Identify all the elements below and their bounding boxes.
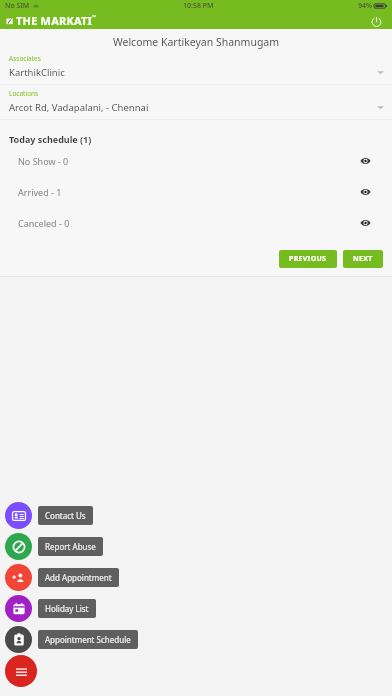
staticText: Contact Us	[45, 510, 86, 521]
button[interactable]: Report Abuse	[5, 531, 103, 562]
button[interactable]: Contact Us	[5, 500, 93, 531]
staticText: Holiday List	[45, 603, 89, 614]
staticText: No SIM	[5, 1, 30, 11]
staticText: Today schedule (1)	[9, 133, 92, 145]
button[interactable]: Associates	[0, 54, 392, 89]
staticText: Appointment Schedule	[45, 634, 131, 645]
staticText: Canceled - 0	[18, 217, 70, 229]
staticText: Arcot Rd, Vadapalani, - Chennai	[9, 101, 149, 114]
staticText: KarthikClinic	[9, 66, 65, 79]
button[interactable]: Add Appointment	[5, 562, 119, 593]
button[interactable]: Locations	[0, 89, 392, 124]
staticText: NEXT	[353, 254, 373, 264]
button[interactable]: Appointment Schedule	[5, 624, 138, 655]
staticText: Locations	[9, 89, 39, 98]
button[interactable]: No Show - 0	[0, 145, 392, 176]
staticText: THE MARKATI	[16, 13, 92, 28]
staticText: Report Abuse	[45, 541, 96, 552]
staticText: Arrived - 1	[18, 186, 62, 198]
staticText: ™	[92, 14, 96, 21]
other: View Arrived - 1	[358, 185, 372, 199]
staticText: Add Appointment	[45, 572, 112, 583]
button[interactable]: Holiday List	[5, 593, 96, 624]
button[interactable]: Menu	[5, 655, 37, 687]
staticText: No Show - 0	[18, 155, 69, 167]
staticText: 94%	[358, 1, 372, 11]
other: View No Show - 0	[358, 154, 372, 168]
button[interactable]: Canceled - 0	[0, 207, 392, 238]
staticText: Associates	[9, 54, 41, 63]
other: View Canceled - 0	[358, 216, 372, 230]
button[interactable]: PREVIOUS	[279, 250, 337, 268]
staticText: Welcome Kartikeyan Shanmugam	[0, 35, 392, 49]
button[interactable]: NEXT	[343, 250, 383, 268]
staticText: 10:58 PM	[183, 1, 214, 11]
staticText: PREVIOUS	[289, 254, 327, 264]
button[interactable]: Arrived - 1	[0, 176, 392, 207]
button[interactable]: Log out	[368, 13, 384, 29]
